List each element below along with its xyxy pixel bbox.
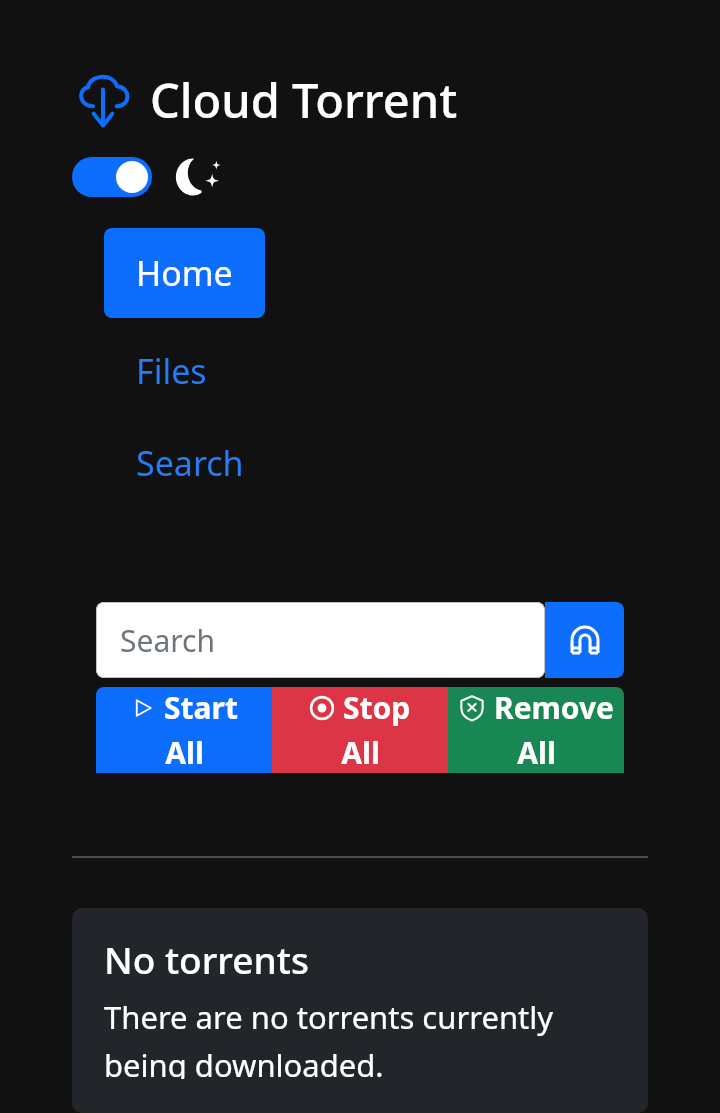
- staticText: No torrents: [104, 934, 309, 984]
- button[interactable]: Add magnet link: [545, 602, 624, 678]
- button[interactable]: Search: [104, 424, 276, 502]
- staticText: Remove: [494, 687, 615, 728]
- button[interactable]: Start: [96, 687, 272, 773]
- button[interactable]: Remove: [448, 687, 624, 773]
- staticText: Start: [164, 687, 238, 728]
- button[interactable]: Search: [96, 602, 545, 678]
- staticText: Files: [136, 348, 207, 394]
- button[interactable]: Stop: [272, 687, 448, 773]
- staticText: Search: [136, 440, 244, 486]
- staticText: Home: [136, 250, 233, 296]
- staticText: All: [341, 732, 380, 773]
- staticText: There are no torrents currently being do…: [104, 996, 616, 1079]
- staticText: Cloud Torrent: [150, 68, 458, 132]
- staticText: Stop: [343, 687, 411, 728]
- button[interactable]: Home: [104, 228, 265, 318]
- staticText: All: [165, 732, 204, 773]
- button[interactable]: Files: [104, 332, 239, 410]
- staticText: Search: [120, 620, 215, 661]
- staticText: All: [517, 732, 556, 773]
- button[interactable]: Toggle dark mode: [72, 157, 152, 197]
- button[interactable]: No torrents: [72, 908, 648, 1113]
